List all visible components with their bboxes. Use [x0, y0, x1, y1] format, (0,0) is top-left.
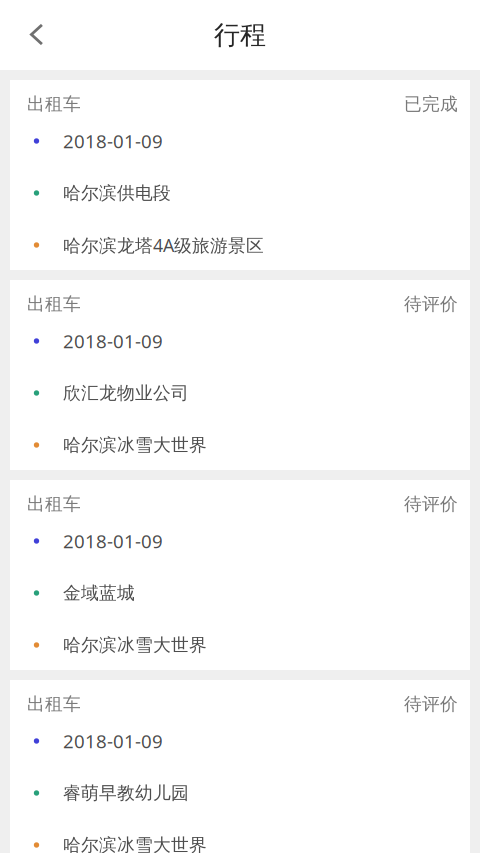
staticText: 待评价: [404, 293, 458, 315]
button[interactable]: 出租车: [10, 80, 470, 270]
staticText: 哈尔滨供电段: [63, 182, 171, 204]
staticText: 出租车: [27, 493, 81, 515]
staticText: 哈尔滨冰雪大世界: [63, 434, 207, 456]
staticText: 待评价: [404, 493, 458, 515]
staticText: 2018-01-09: [63, 528, 163, 554]
button[interactable]: 出租车: [10, 680, 470, 853]
staticText: 2018-01-09: [63, 128, 163, 154]
staticText: 出租车: [27, 293, 81, 315]
staticText: 出租车: [27, 93, 81, 115]
button[interactable]: 出租车: [10, 480, 470, 670]
staticText: 哈尔滨冰雪大世界: [63, 834, 207, 853]
staticText: 哈尔滨冰雪大世界: [63, 634, 207, 656]
staticText: 出租车: [27, 693, 81, 715]
button[interactable]: Back: [11, 13, 55, 57]
staticText: 欣汇龙物业公司: [63, 382, 189, 404]
button[interactable]: 出租车: [10, 280, 470, 470]
staticText: 2018-01-09: [63, 728, 163, 754]
staticText: 已完成: [404, 93, 458, 115]
staticText: 金域蓝城: [63, 582, 135, 604]
staticText: 睿萌早教幼儿园: [63, 782, 189, 804]
staticText: 2018-01-09: [63, 328, 163, 354]
staticText: 待评价: [404, 693, 458, 715]
staticText: 哈尔滨龙塔4A级旅游景区: [63, 233, 264, 257]
staticText: 行程: [214, 19, 266, 51]
